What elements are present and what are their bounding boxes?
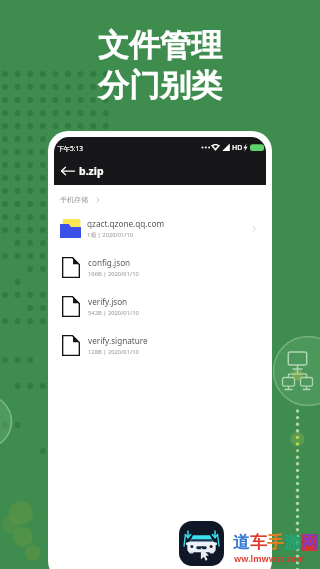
staticText: ww.lmwwsz.com (234, 553, 305, 565)
button[interactable]: App icon (179, 521, 224, 566)
staticText: 下午5:13 (57, 144, 83, 153)
staticText: 游 (284, 532, 301, 553)
button[interactable]: verify.signature (54, 326, 266, 365)
staticText: qzact.qzone.qq.com (87, 218, 165, 229)
button[interactable]: qzact.qzone.qq.com (54, 209, 266, 248)
button[interactable]: Back (59, 162, 77, 180)
staticText: b.zip (79, 164, 104, 178)
staticText: 网 (301, 532, 318, 553)
staticText: 文件管理 (98, 26, 222, 65)
staticText: config.json (88, 257, 131, 268)
staticText: verify.signature (88, 335, 148, 346)
staticText: 106B | 2020/01/10 (88, 270, 139, 278)
staticText: 道 (233, 532, 250, 553)
staticText: 542B | 2020/01/10 (88, 309, 139, 317)
staticText: verify.json (88, 296, 128, 307)
staticText: 车 (250, 532, 267, 553)
staticText: HD (232, 143, 243, 153)
staticText: 分门别类 (98, 66, 222, 105)
staticText: 1项 | 2020/01/10 (87, 231, 134, 239)
staticText: 手 (267, 532, 284, 553)
button[interactable]: verify.json (54, 287, 266, 326)
staticText: 128B | 2020/01/10 (88, 348, 139, 356)
staticText: 手机存储 (60, 195, 88, 204)
button[interactable]: config.json (54, 248, 266, 287)
